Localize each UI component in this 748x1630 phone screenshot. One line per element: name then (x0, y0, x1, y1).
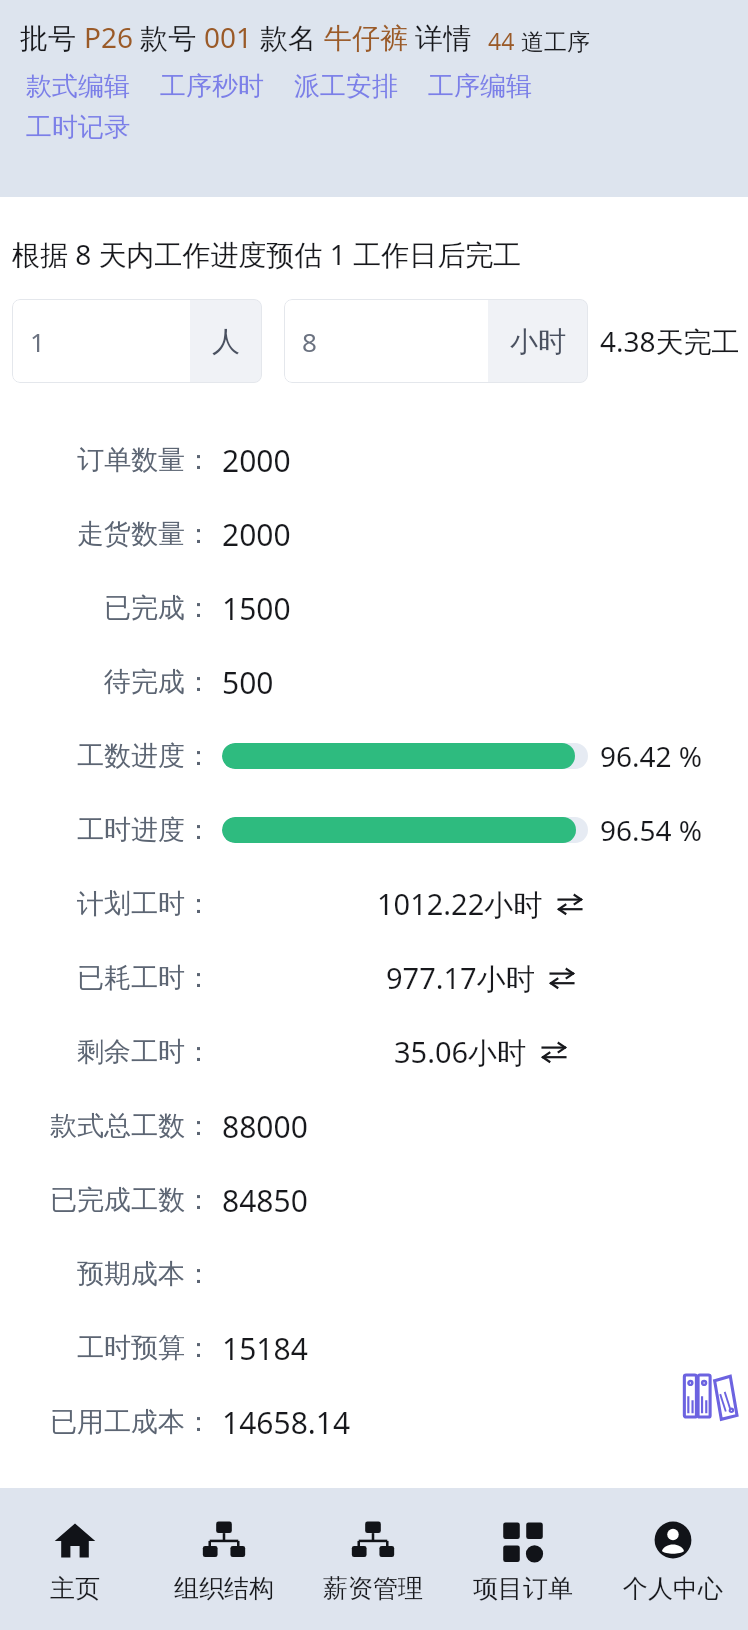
staticText: 款式总工数： (0, 1109, 212, 1143)
button[interactable]: 派工安排 (294, 70, 398, 103)
staticText: 2000 (222, 514, 291, 555)
button[interactable]: 项目订单 (448, 1488, 598, 1630)
button[interactable]: 工序资料 (654, 1338, 748, 1448)
staticText: 96.42 % (600, 737, 703, 775)
staticText: 款式编辑 (26, 70, 130, 103)
button[interactable]: 工时记录 (26, 111, 130, 144)
staticText: 工时预算： (0, 1331, 212, 1365)
staticText: 88000 (222, 1106, 308, 1147)
staticText: 款名 (253, 18, 324, 56)
staticText: 已完成： (0, 591, 212, 625)
button[interactable]: 35.06小时 (394, 1032, 567, 1072)
staticText: 工序秒时 (160, 70, 264, 103)
button[interactable]: 个人中心 (598, 1488, 748, 1630)
staticText: 预期成本： (0, 1257, 212, 1291)
staticText: 薪资管理 (323, 1573, 423, 1604)
staticText: 35.06小时 (394, 1032, 527, 1072)
staticText: 15184 (222, 1328, 308, 1369)
staticText: 1 (30, 324, 45, 359)
staticText: 道工序 (515, 25, 590, 56)
staticText: 1500 (222, 588, 291, 629)
staticText: 14658.14 (222, 1402, 351, 1443)
staticText: 96.54 % (600, 811, 703, 849)
staticText: 977.17小时 (386, 958, 535, 998)
staticText: 根据 8 天内工作进度预估 1 工作日后完工 (12, 235, 522, 273)
staticText: P26 (84, 18, 133, 56)
staticText: 2000 (222, 440, 291, 481)
staticText: 1012.22小时 (377, 884, 543, 924)
button[interactable]: 1 (12, 299, 262, 383)
other: 切换单位 (557, 891, 583, 917)
staticText: 剩余工时： (0, 1035, 212, 1069)
staticText: 项目订单 (473, 1573, 573, 1604)
staticText: 详情 (408, 18, 472, 56)
staticText: 001 (204, 18, 253, 56)
staticText: 工时进度： (0, 813, 212, 847)
staticText: 已用工成本： (0, 1405, 212, 1439)
staticText: 工时记录 (26, 111, 130, 144)
staticText: 待完成： (0, 665, 212, 699)
button[interactable]: 工序编辑 (428, 70, 532, 103)
staticText: 人 (212, 324, 240, 359)
button[interactable]: 薪资管理 (298, 1488, 448, 1630)
staticText: 4.38天完工 (600, 322, 740, 360)
staticText: 计划工时： (0, 887, 212, 921)
other: 切换单位 (541, 1039, 567, 1065)
staticText: 派工安排 (294, 70, 398, 103)
staticText: 已耗工时： (0, 961, 212, 995)
button[interactable]: 1012.22小时 (377, 884, 583, 924)
staticText: 走货数量： (0, 517, 212, 551)
staticText: 主页 (50, 1573, 100, 1604)
button[interactable]: 工序秒时 (160, 70, 264, 103)
staticText: 工数进度： (0, 739, 212, 773)
other: 切换单位 (549, 965, 575, 991)
staticText: 款号 (133, 18, 204, 56)
button[interactable]: 主页 (0, 1488, 149, 1630)
staticText: 已完成工数： (0, 1183, 212, 1217)
button[interactable]: 款式编辑 (26, 70, 130, 103)
button[interactable]: 977.17小时 (386, 958, 575, 998)
staticText: 工序编辑 (428, 70, 532, 103)
staticText: 个人中心 (623, 1573, 723, 1604)
staticText: 44 (488, 25, 515, 56)
button[interactable]: 8 (284, 299, 588, 383)
staticText: 订单数量： (0, 443, 212, 477)
staticText: 批号 (20, 18, 84, 56)
staticText: 84850 (222, 1180, 308, 1221)
button[interactable]: 组织结构 (149, 1488, 298, 1630)
staticText: 牛仔裤 (324, 21, 408, 56)
staticText: 小时 (510, 324, 566, 359)
staticText: 组织结构 (174, 1573, 274, 1604)
staticText: 8 (302, 324, 317, 359)
staticText: 500 (222, 662, 274, 703)
